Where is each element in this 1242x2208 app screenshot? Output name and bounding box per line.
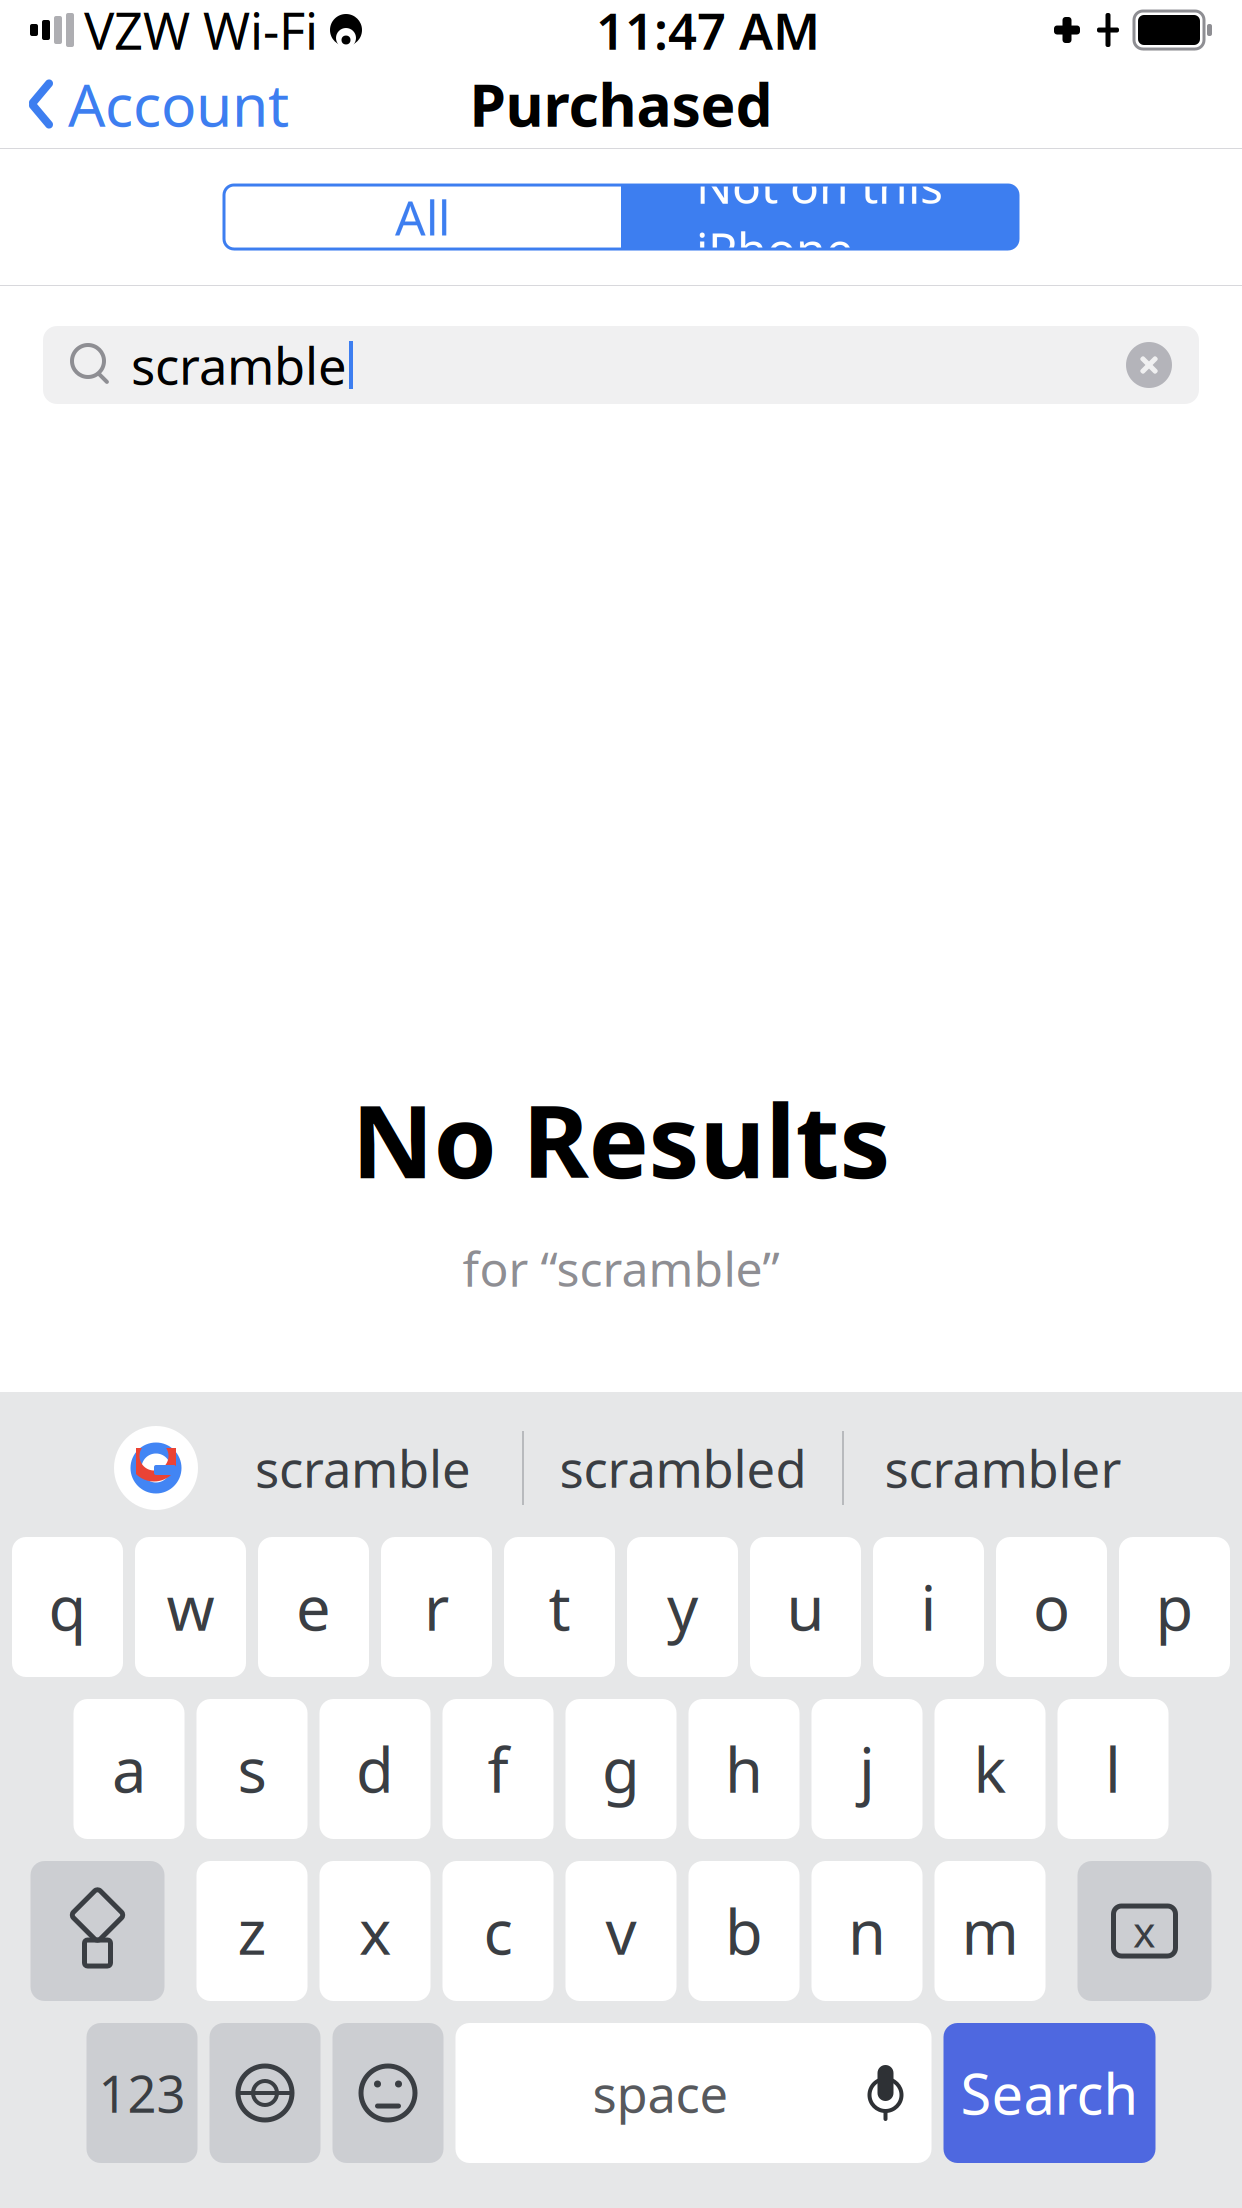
button[interactable]: j <box>811 1699 922 1839</box>
button[interactable]: e <box>258 1537 369 1677</box>
button[interactable]: scrambler <box>844 1413 1162 1523</box>
staticText: 123 <box>98 2059 185 2127</box>
button[interactable]: g <box>565 1699 676 1839</box>
button[interactable]: x <box>319 1861 430 2001</box>
staticText: a <box>112 1728 146 1810</box>
staticText: space <box>592 2059 728 2127</box>
button[interactable]: p <box>1119 1537 1230 1677</box>
staticText: q <box>48 1566 86 1648</box>
button[interactable]: scrambled <box>524 1413 842 1523</box>
staticText: u <box>786 1566 824 1648</box>
button[interactable]: Emoji <box>332 2023 443 2163</box>
button[interactable]: i <box>873 1537 984 1677</box>
staticText: j <box>859 1728 875 1810</box>
staticText: b <box>725 1890 763 1972</box>
staticText: i <box>920 1566 936 1648</box>
button[interactable]: s <box>196 1699 307 1839</box>
staticText: scrambler <box>884 1434 1121 1502</box>
staticText: t <box>548 1566 570 1648</box>
staticText: k <box>973 1728 1006 1810</box>
button[interactable]: q <box>12 1537 123 1677</box>
staticText: n <box>848 1890 886 1972</box>
button[interactable]: scramble <box>204 1413 522 1523</box>
staticText: r <box>424 1566 449 1648</box>
staticText: d <box>356 1728 394 1810</box>
button[interactable]: o <box>996 1537 1107 1677</box>
staticText: w <box>166 1566 214 1648</box>
button[interactable]: h <box>688 1699 799 1839</box>
button[interactable]: r <box>381 1537 492 1677</box>
button[interactable]: 123 <box>86 2023 197 2163</box>
staticText: x <box>1133 1903 1156 1959</box>
button[interactable]: a <box>73 1699 184 1839</box>
staticText: g <box>602 1728 640 1810</box>
button[interactable]: k <box>934 1699 1045 1839</box>
staticText: scramble <box>131 331 347 399</box>
button[interactable]: c <box>442 1861 553 2001</box>
staticText: scrambled <box>559 1434 806 1502</box>
staticText: l <box>1105 1728 1121 1810</box>
staticText: p <box>1155 1566 1193 1648</box>
staticText: Purchased <box>469 65 772 143</box>
staticText: Search <box>960 2056 1138 2130</box>
button[interactable]: m <box>934 1861 1045 2001</box>
button[interactable]: w <box>135 1537 246 1677</box>
button[interactable]: Not on this iPhone <box>621 185 1018 249</box>
staticText: for “scramble” <box>462 1236 779 1300</box>
staticText: m <box>961 1890 1018 1972</box>
button[interactable]: d <box>319 1699 430 1839</box>
button[interactable]: Google <box>108 1420 204 1516</box>
button[interactable]: Clear text <box>1109 325 1189 405</box>
button[interactable]: f <box>442 1699 553 1839</box>
button[interactable]: All <box>224 185 621 249</box>
staticText: scramble <box>255 1434 471 1502</box>
staticText: 11:47 AM <box>596 0 820 64</box>
staticText: c <box>483 1890 512 1972</box>
button[interactable]: t <box>504 1537 615 1677</box>
button[interactable]: Account <box>0 60 317 148</box>
staticText: o <box>1033 1566 1070 1648</box>
staticText: Not on this iPhone <box>696 153 943 281</box>
button[interactable]: b <box>688 1861 799 2001</box>
button[interactable]: Search <box>943 2023 1155 2163</box>
button[interactable]: Delete <box>1077 1861 1211 2001</box>
staticText: v <box>605 1890 636 1972</box>
staticText: x <box>359 1890 391 1972</box>
button[interactable]: Switch keyboard <box>209 2023 320 2163</box>
staticText: y <box>667 1566 698 1648</box>
staticText: Account <box>68 65 289 143</box>
button[interactable]: n <box>811 1861 922 2001</box>
button[interactable]: l <box>1057 1699 1168 1839</box>
staticText: No Results <box>351 1072 890 1206</box>
button[interactable]: Shift <box>30 1861 164 2001</box>
button[interactable]: space <box>455 2023 931 2163</box>
button[interactable]: z <box>196 1861 307 2001</box>
staticText: s <box>237 1728 266 1810</box>
staticText: All <box>395 185 450 249</box>
button[interactable]: u <box>750 1537 861 1677</box>
button[interactable]: y <box>627 1537 738 1677</box>
staticText: f <box>487 1728 508 1810</box>
staticText: h <box>725 1728 763 1810</box>
staticText: z <box>237 1890 266 1972</box>
staticText: VZW Wi-Fi <box>84 0 318 64</box>
button[interactable]: v <box>565 1861 676 2001</box>
staticText: e <box>296 1566 331 1648</box>
